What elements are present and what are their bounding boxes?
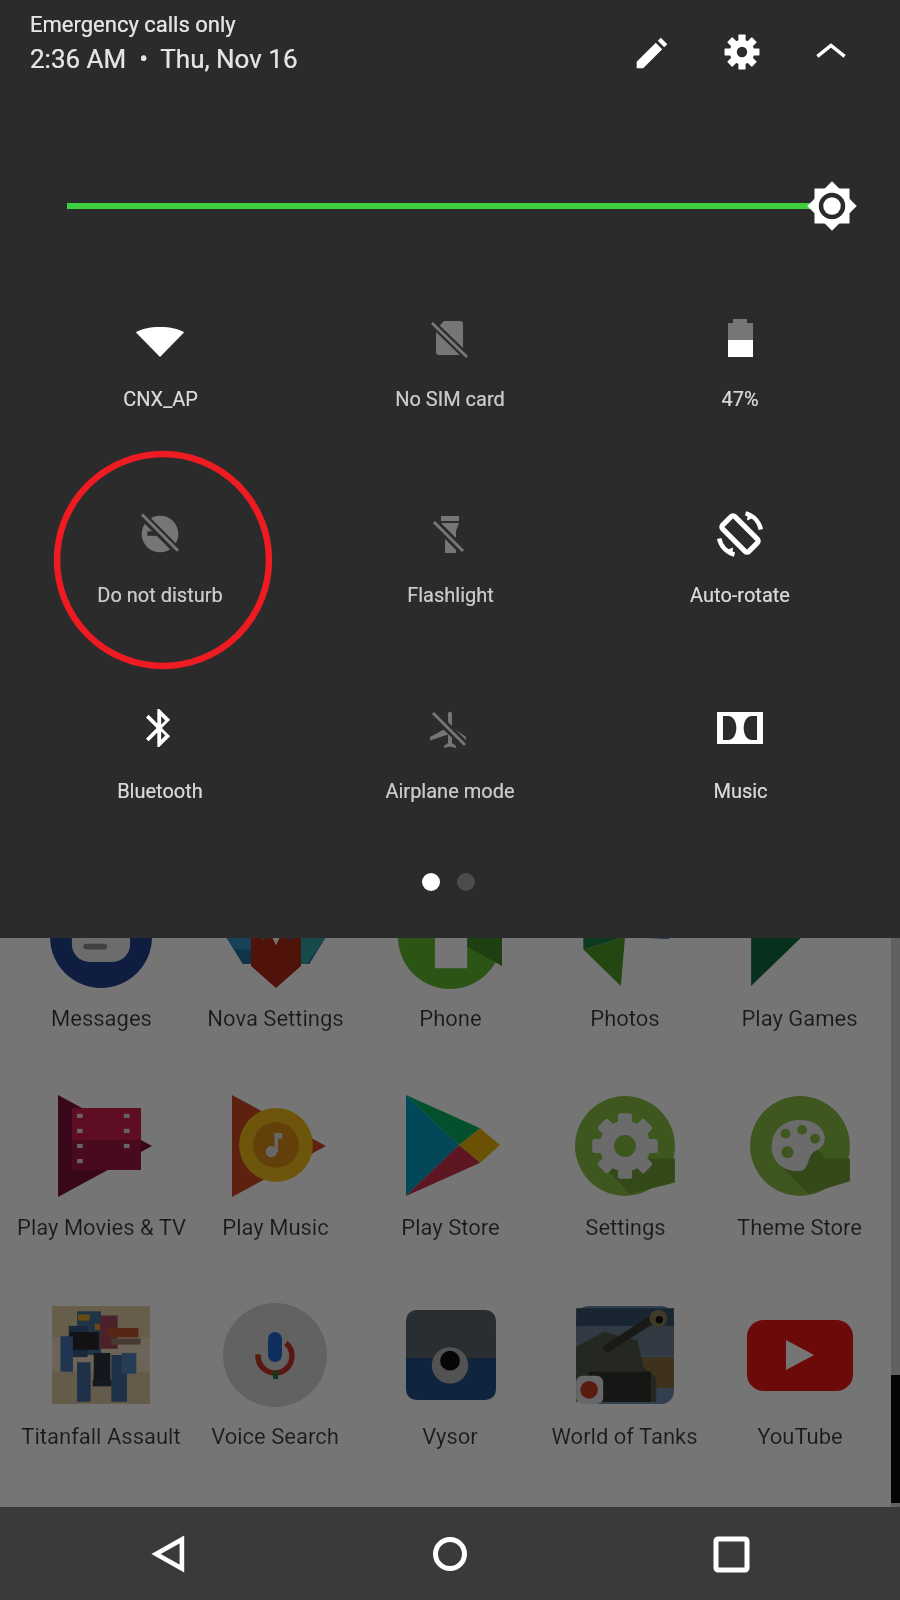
button[interactable]: YouTube xyxy=(712,1303,887,1478)
staticText: Music xyxy=(713,779,768,802)
staticText: Photos xyxy=(590,1006,660,1032)
staticText: Nova Settings xyxy=(207,1006,344,1032)
staticText: Play Store xyxy=(401,1215,500,1241)
staticText: Airplane mode xyxy=(385,779,515,802)
staticText: No SIM card xyxy=(395,387,505,410)
button[interactable]: Vysor xyxy=(362,1303,537,1478)
button[interactable]: 47% xyxy=(595,308,885,438)
button[interactable]: Titanfall Assault xyxy=(14,1303,188,1478)
staticText: Bluetooth xyxy=(117,779,203,802)
staticText: Auto-rotate xyxy=(690,583,790,606)
button[interactable]: No SIM card xyxy=(305,308,595,438)
staticText: Theme Store xyxy=(737,1215,862,1241)
staticText: YouTube xyxy=(757,1424,843,1450)
button[interactable]: Collapse xyxy=(787,8,875,96)
button[interactable]: Do not disturb xyxy=(15,504,305,634)
button[interactable]: Auto-rotate xyxy=(595,504,885,634)
staticText: Play Games xyxy=(741,1006,858,1032)
staticText: 2:36 AM • Thu, Nov 16 xyxy=(30,44,298,74)
button[interactable]: Brightness xyxy=(0,174,900,238)
button[interactable]: Flashlight xyxy=(305,504,595,634)
button[interactable]: Photos xyxy=(537,885,712,1060)
button[interactable]: Settings xyxy=(698,8,786,96)
button[interactable]: Messages xyxy=(14,885,188,1060)
button[interactable]: Airplane mode xyxy=(305,700,595,830)
staticText: CNX_AP xyxy=(123,387,198,410)
button[interactable]: Home xyxy=(405,1509,495,1599)
button[interactable]: Recents xyxy=(686,1509,776,1599)
staticText: Settings xyxy=(585,1215,666,1241)
button[interactable]: Play Music xyxy=(188,1094,362,1269)
staticText: Phone xyxy=(419,1006,482,1032)
staticText: World of Tanks xyxy=(551,1424,698,1450)
button[interactable]: Settings xyxy=(537,1094,712,1269)
button[interactable]: Bluetooth xyxy=(15,700,305,830)
staticText: 47% xyxy=(721,387,759,410)
staticText: Messages xyxy=(51,1006,152,1032)
staticText: Do not disturb xyxy=(97,583,223,606)
button[interactable]: Voice Search xyxy=(188,1303,362,1478)
staticText: Flashlight xyxy=(407,583,494,606)
button[interactable]: Play Games xyxy=(712,885,887,1060)
button[interactable]: Phone xyxy=(362,885,537,1060)
button[interactable]: Nova Settings xyxy=(188,885,362,1060)
staticText: Play Movies & TV xyxy=(17,1215,186,1241)
button[interactable]: Theme Store xyxy=(712,1094,887,1269)
staticText: Titanfall Assault xyxy=(21,1424,181,1450)
button[interactable]: CNX_AP xyxy=(15,308,305,438)
staticText: Vysor xyxy=(422,1424,478,1450)
button[interactable]: Edit xyxy=(608,9,696,97)
staticText: Emergency calls only xyxy=(30,12,236,38)
button[interactable]: Play Store xyxy=(362,1094,537,1269)
button[interactable]: World of Tanks xyxy=(537,1303,712,1478)
button[interactable]: Back xyxy=(125,1509,215,1599)
button[interactable]: Play Movies & TV xyxy=(14,1094,188,1269)
staticText: Voice Search xyxy=(211,1424,339,1450)
staticText: Play Music xyxy=(222,1215,329,1241)
button[interactable]: Music xyxy=(595,700,885,830)
